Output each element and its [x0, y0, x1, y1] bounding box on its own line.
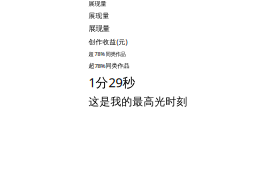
staticText: 超 78% 同类作品	[88, 50, 125, 58]
staticText: 超78%同类作品	[88, 61, 129, 70]
staticText: 展现量	[88, 24, 109, 33]
staticText: 展现量	[88, 0, 106, 8]
staticText: 1分29秒	[88, 74, 135, 91]
staticText: 这是我的最高光时刻	[88, 95, 187, 108]
staticText: 创作收益(元)	[88, 37, 127, 46]
staticText: 展现量	[88, 12, 109, 20]
